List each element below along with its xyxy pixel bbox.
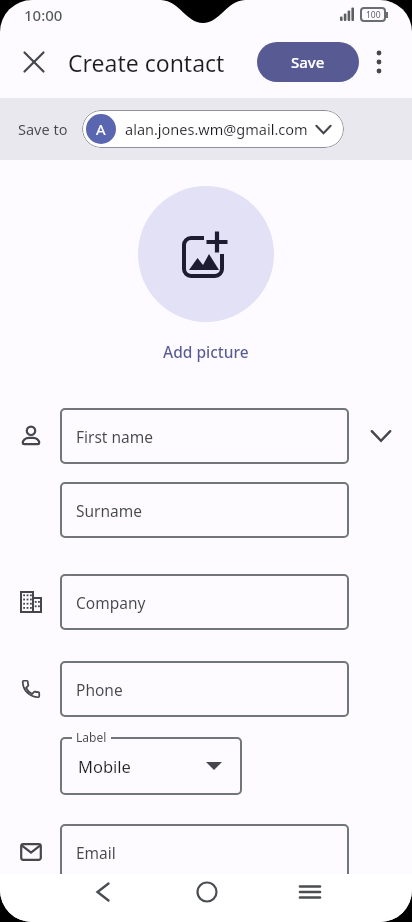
staticText: Label	[76, 729, 107, 745]
button[interactable]: Email	[60, 824, 349, 880]
button[interactable]	[155, 874, 258, 910]
staticText: A	[96, 119, 106, 139]
button[interactable]	[51, 874, 155, 910]
button[interactable]	[370, 425, 392, 447]
button[interactable]: A	[82, 110, 344, 148]
staticText: Email	[76, 842, 116, 863]
staticText: Mobile	[78, 755, 131, 777]
staticText: 10:00	[24, 5, 63, 25]
staticText: Company	[76, 592, 146, 613]
staticText: Create contact	[68, 47, 225, 78]
button[interactable]	[138, 186, 274, 322]
staticText: Add picture	[163, 341, 249, 362]
button[interactable]	[22, 50, 46, 74]
button[interactable]: Add picture	[163, 341, 249, 362]
button[interactable]: Mobile	[60, 737, 242, 795]
staticText: alan.jones.wm@gmail.com	[125, 119, 308, 139]
staticText: Phone	[76, 679, 123, 700]
staticText: Surname	[76, 500, 142, 521]
staticText: Save to	[18, 119, 68, 139]
button[interactable]: First name	[60, 408, 349, 464]
button[interactable]	[367, 50, 391, 74]
button[interactable]: Surname	[60, 482, 349, 538]
button[interactable]	[258, 874, 361, 910]
button[interactable]: Company	[60, 574, 349, 630]
button[interactable]: Phone	[60, 661, 349, 717]
staticText: Save	[291, 52, 325, 72]
button[interactable]: Save	[257, 42, 359, 82]
staticText: 100	[366, 9, 381, 21]
staticText: First name	[76, 426, 154, 447]
